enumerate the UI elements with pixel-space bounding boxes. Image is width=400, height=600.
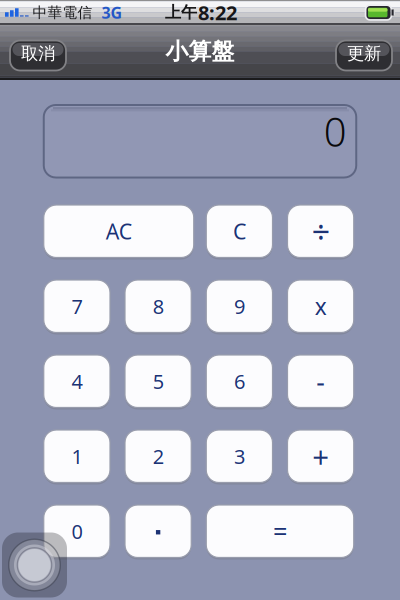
staticText: 2 — [153, 443, 164, 470]
staticText: 5 — [153, 368, 164, 395]
button[interactable]: 取消 — [10, 40, 66, 70]
staticText: 0 — [324, 105, 347, 158]
staticText: - — [316, 363, 325, 399]
staticText: ÷ — [312, 210, 330, 252]
button[interactable]: 0 — [44, 505, 110, 557]
button[interactable]: 1 — [44, 430, 110, 482]
button[interactable]: 7 — [44, 280, 110, 332]
staticText: 8:22 — [198, 0, 237, 26]
button[interactable]: 2 — [125, 430, 191, 482]
button[interactable]: AssistiveTouch — [2, 532, 67, 597]
staticText: 9 — [234, 293, 245, 320]
staticText: 8 — [153, 293, 164, 320]
staticText: 7 — [71, 293, 82, 320]
staticText: 小算盤 — [165, 38, 234, 65]
staticText: 1 — [71, 443, 82, 470]
staticText: 更新 — [347, 43, 381, 64]
button[interactable]: = — [206, 505, 354, 557]
staticText: 中華電信 — [33, 3, 93, 21]
staticText: 4 — [71, 368, 82, 395]
button[interactable]: 9 — [206, 280, 272, 332]
staticText: 上午 — [165, 3, 197, 22]
staticText: 6 — [234, 368, 245, 395]
staticText: 0 — [71, 518, 82, 545]
button[interactable]: x — [287, 280, 354, 332]
staticText: 取消 — [21, 43, 55, 64]
button[interactable]: 6 — [206, 355, 272, 407]
button[interactable]: ÷ — [287, 205, 354, 257]
button[interactable]: 8 — [125, 280, 191, 332]
button[interactable]: 3 — [206, 430, 272, 482]
button[interactable]: AC — [44, 205, 194, 257]
button[interactable]: 小數點 — [125, 505, 191, 557]
button[interactable]: + — [287, 430, 354, 482]
staticText: x — [315, 291, 327, 321]
staticText: 3 — [234, 443, 245, 470]
staticText: = — [273, 514, 287, 548]
staticText: C — [233, 217, 246, 245]
button[interactable]: 5 — [125, 355, 191, 407]
button[interactable]: C — [206, 205, 272, 257]
staticText: + — [312, 437, 329, 476]
button[interactable]: 更新 — [336, 40, 392, 70]
staticText: AC — [106, 217, 132, 245]
button[interactable]: - — [287, 355, 354, 407]
staticText: 3G — [102, 2, 123, 23]
button[interactable]: 4 — [44, 355, 110, 407]
